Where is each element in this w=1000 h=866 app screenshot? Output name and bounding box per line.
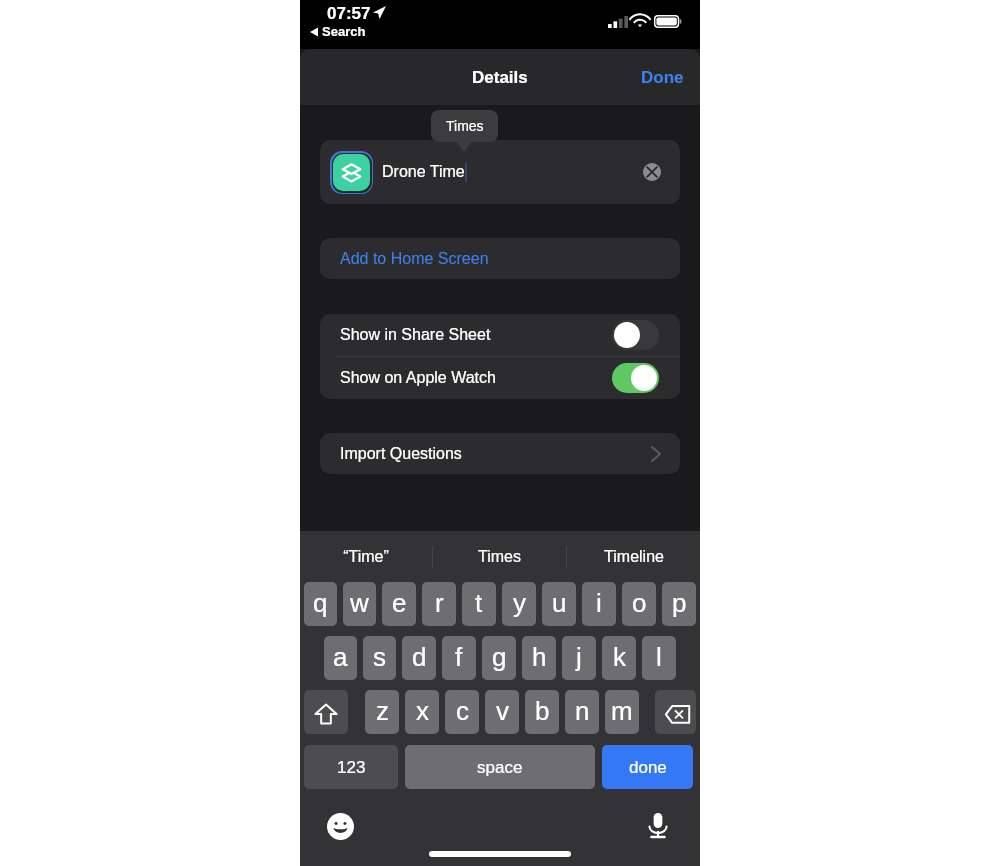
button[interactable]: v	[485, 690, 519, 734]
button[interactable]: Clear text	[637, 157, 667, 187]
button[interactable]: Done	[625, 60, 700, 95]
button[interactable]: q	[304, 582, 337, 626]
button[interactable]: c	[445, 690, 479, 734]
button[interactable]: a	[324, 636, 357, 680]
staticText: Drone Time	[382, 163, 465, 181]
button[interactable]: space	[405, 745, 595, 789]
staticText: Import Questions	[340, 445, 462, 463]
staticText: l	[656, 642, 662, 671]
staticText: h	[532, 642, 547, 671]
button[interactable]: “Time”	[300, 531, 432, 582]
button[interactable]: g	[482, 636, 516, 680]
button[interactable]: Dictation	[641, 808, 675, 842]
staticText: t	[475, 588, 483, 617]
button[interactable]: 123	[304, 745, 398, 789]
staticText: a	[333, 642, 348, 671]
button[interactable]: Shift	[304, 690, 348, 734]
staticText: “Time”	[343, 548, 389, 566]
staticText: Show in Share Sheet	[340, 326, 491, 344]
button[interactable]: Times	[431, 110, 498, 142]
staticText: u	[552, 588, 567, 617]
staticText: g	[492, 642, 507, 671]
staticText: q	[313, 588, 328, 617]
staticText: x	[416, 696, 429, 725]
button[interactable]: m	[605, 690, 639, 734]
button[interactable]: b	[525, 690, 559, 734]
button[interactable]: h	[522, 636, 556, 680]
staticText: z	[376, 696, 389, 725]
staticText: n	[575, 696, 590, 725]
staticText: e	[392, 588, 407, 617]
button[interactable]: Add to Home Screen	[320, 238, 680, 279]
button[interactable]: x	[405, 690, 439, 734]
button[interactable]: w	[343, 582, 376, 626]
button[interactable]: s	[363, 636, 396, 680]
staticText: Search	[322, 24, 366, 39]
staticText: i	[596, 588, 602, 617]
button[interactable]: e	[382, 582, 416, 626]
staticText: Add to Home Screen	[340, 250, 489, 268]
button[interactable]: done	[602, 745, 693, 789]
button[interactable]: t	[462, 582, 496, 626]
button[interactable]: o	[622, 582, 656, 626]
button[interactable]: j	[562, 636, 596, 680]
button[interactable]: Timeline	[567, 531, 700, 582]
button[interactable]: r	[422, 582, 456, 626]
staticText: done	[629, 758, 667, 777]
button[interactable]: Backspace	[655, 690, 696, 734]
staticText: d	[412, 642, 427, 671]
staticText: m	[611, 696, 633, 725]
staticText: y	[513, 588, 526, 617]
staticText: k	[613, 642, 626, 671]
staticText: v	[496, 696, 509, 725]
button[interactable]: Drone Time	[320, 140, 680, 204]
staticText: 07:57	[327, 4, 371, 23]
button[interactable]: z	[365, 690, 399, 734]
staticText: space	[477, 758, 523, 777]
button[interactable]: Show in Share Sheet	[320, 314, 680, 356]
staticText: j	[576, 642, 582, 671]
staticText: r	[435, 588, 444, 617]
button[interactable]: Import Questions	[320, 433, 680, 474]
button[interactable]: d	[402, 636, 436, 680]
staticText: Show on Apple Watch	[340, 369, 496, 387]
button[interactable]: Times	[433, 531, 566, 582]
button[interactable]: l	[642, 636, 676, 680]
staticText: b	[535, 696, 550, 725]
staticText: o	[632, 588, 647, 617]
staticText: 123	[337, 758, 366, 777]
staticText: Details	[472, 68, 528, 87]
button[interactable]: Show on Apple Watch	[320, 357, 680, 399]
staticText: w	[350, 588, 369, 617]
button[interactable]: n	[565, 690, 599, 734]
button[interactable]: p	[662, 582, 696, 626]
staticText: Done	[641, 68, 684, 87]
staticText: Times	[446, 118, 484, 134]
button[interactable]: i	[582, 582, 616, 626]
button[interactable]: y	[502, 582, 536, 626]
staticText: Times	[478, 548, 521, 566]
staticText: s	[373, 642, 386, 671]
button[interactable]: f	[442, 636, 476, 680]
staticText: p	[672, 588, 687, 617]
staticText: Timeline	[604, 548, 664, 566]
staticText: c	[456, 696, 469, 725]
button[interactable]: Emoji keyboard	[323, 809, 357, 843]
button[interactable]: k	[602, 636, 636, 680]
button[interactable]: u	[542, 582, 576, 626]
staticText: f	[455, 642, 463, 671]
